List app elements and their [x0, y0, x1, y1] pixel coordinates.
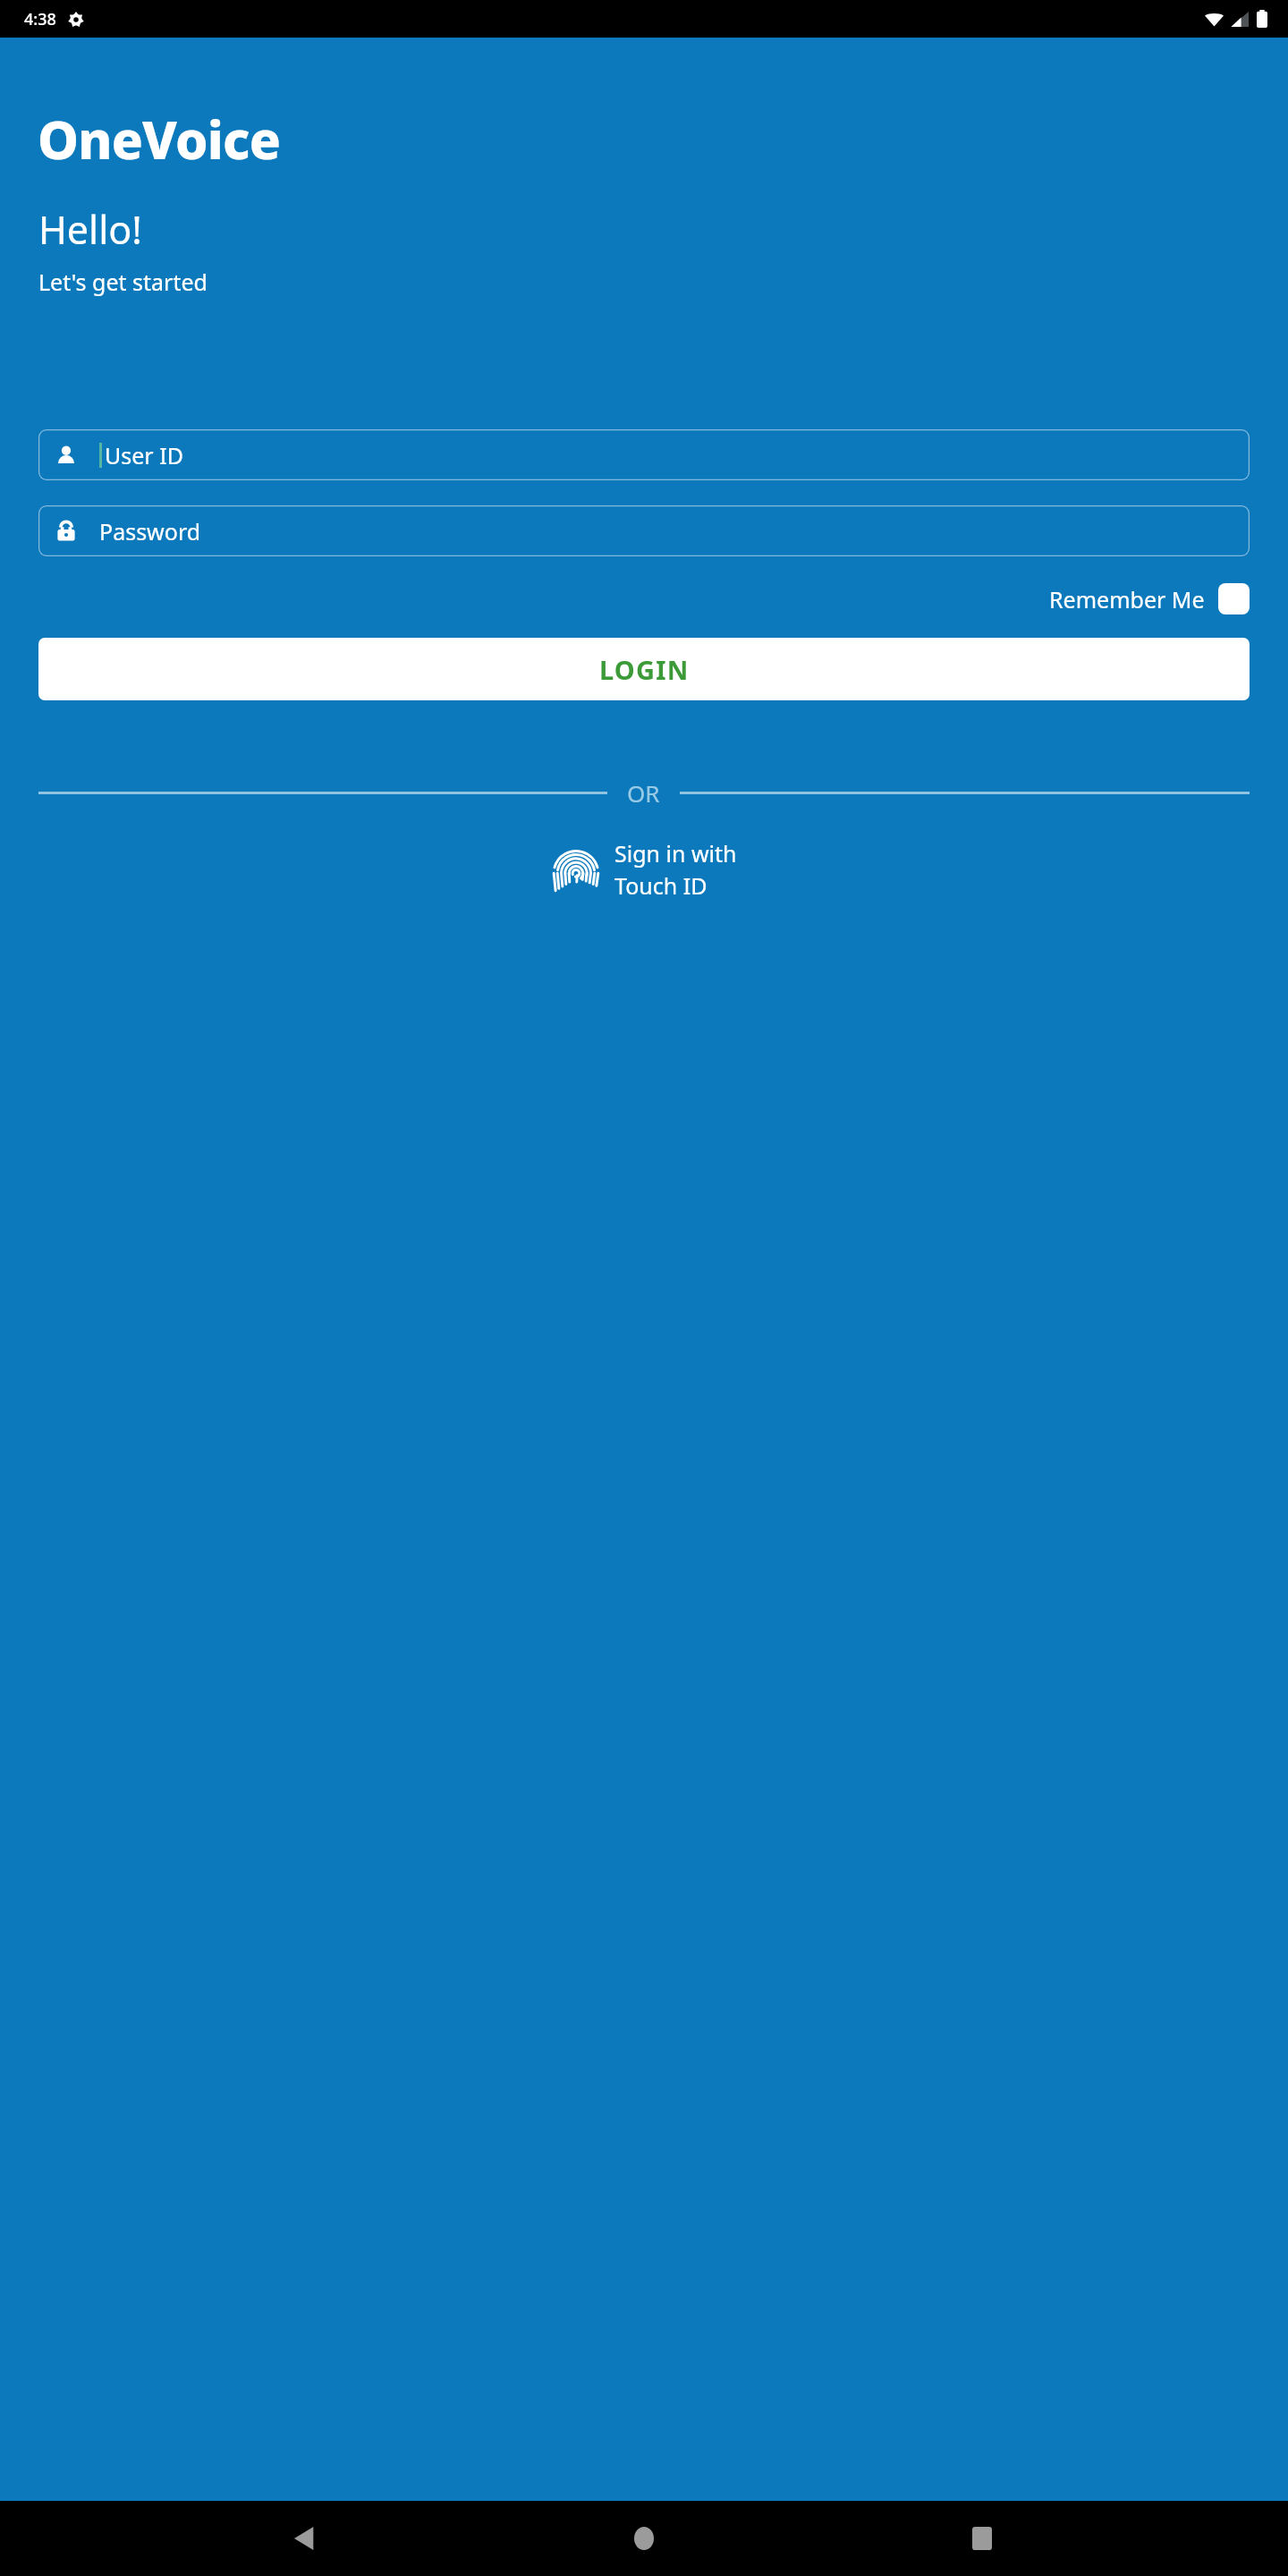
button[interactable]: Recent apps	[950, 2506, 1014, 2571]
button[interactable]: Back	[274, 2506, 338, 2571]
staticText: LOGIN	[599, 652, 690, 687]
staticText: Password	[99, 516, 201, 547]
button[interactable]: LOGIN	[38, 638, 1250, 700]
button[interactable]: Password	[38, 505, 1250, 556]
staticText: Touch ID	[614, 870, 708, 901]
staticText: Remember Me	[1049, 584, 1205, 614]
staticText: Sign in with	[614, 838, 737, 869]
button[interactable]: Sign in with	[552, 838, 737, 901]
button[interactable]: Home	[612, 2506, 676, 2571]
staticText: User ID	[105, 440, 183, 470]
staticText: Let's get started	[38, 267, 208, 297]
staticText: OR	[627, 777, 660, 809]
staticText: OneVoice	[38, 104, 281, 174]
staticText: 4:38	[24, 8, 56, 30]
staticText: Hello!	[38, 203, 142, 256]
button[interactable]: User ID	[38, 429, 1250, 480]
button[interactable]: Remember Me	[1049, 583, 1250, 614]
other: Settings	[68, 12, 84, 28]
